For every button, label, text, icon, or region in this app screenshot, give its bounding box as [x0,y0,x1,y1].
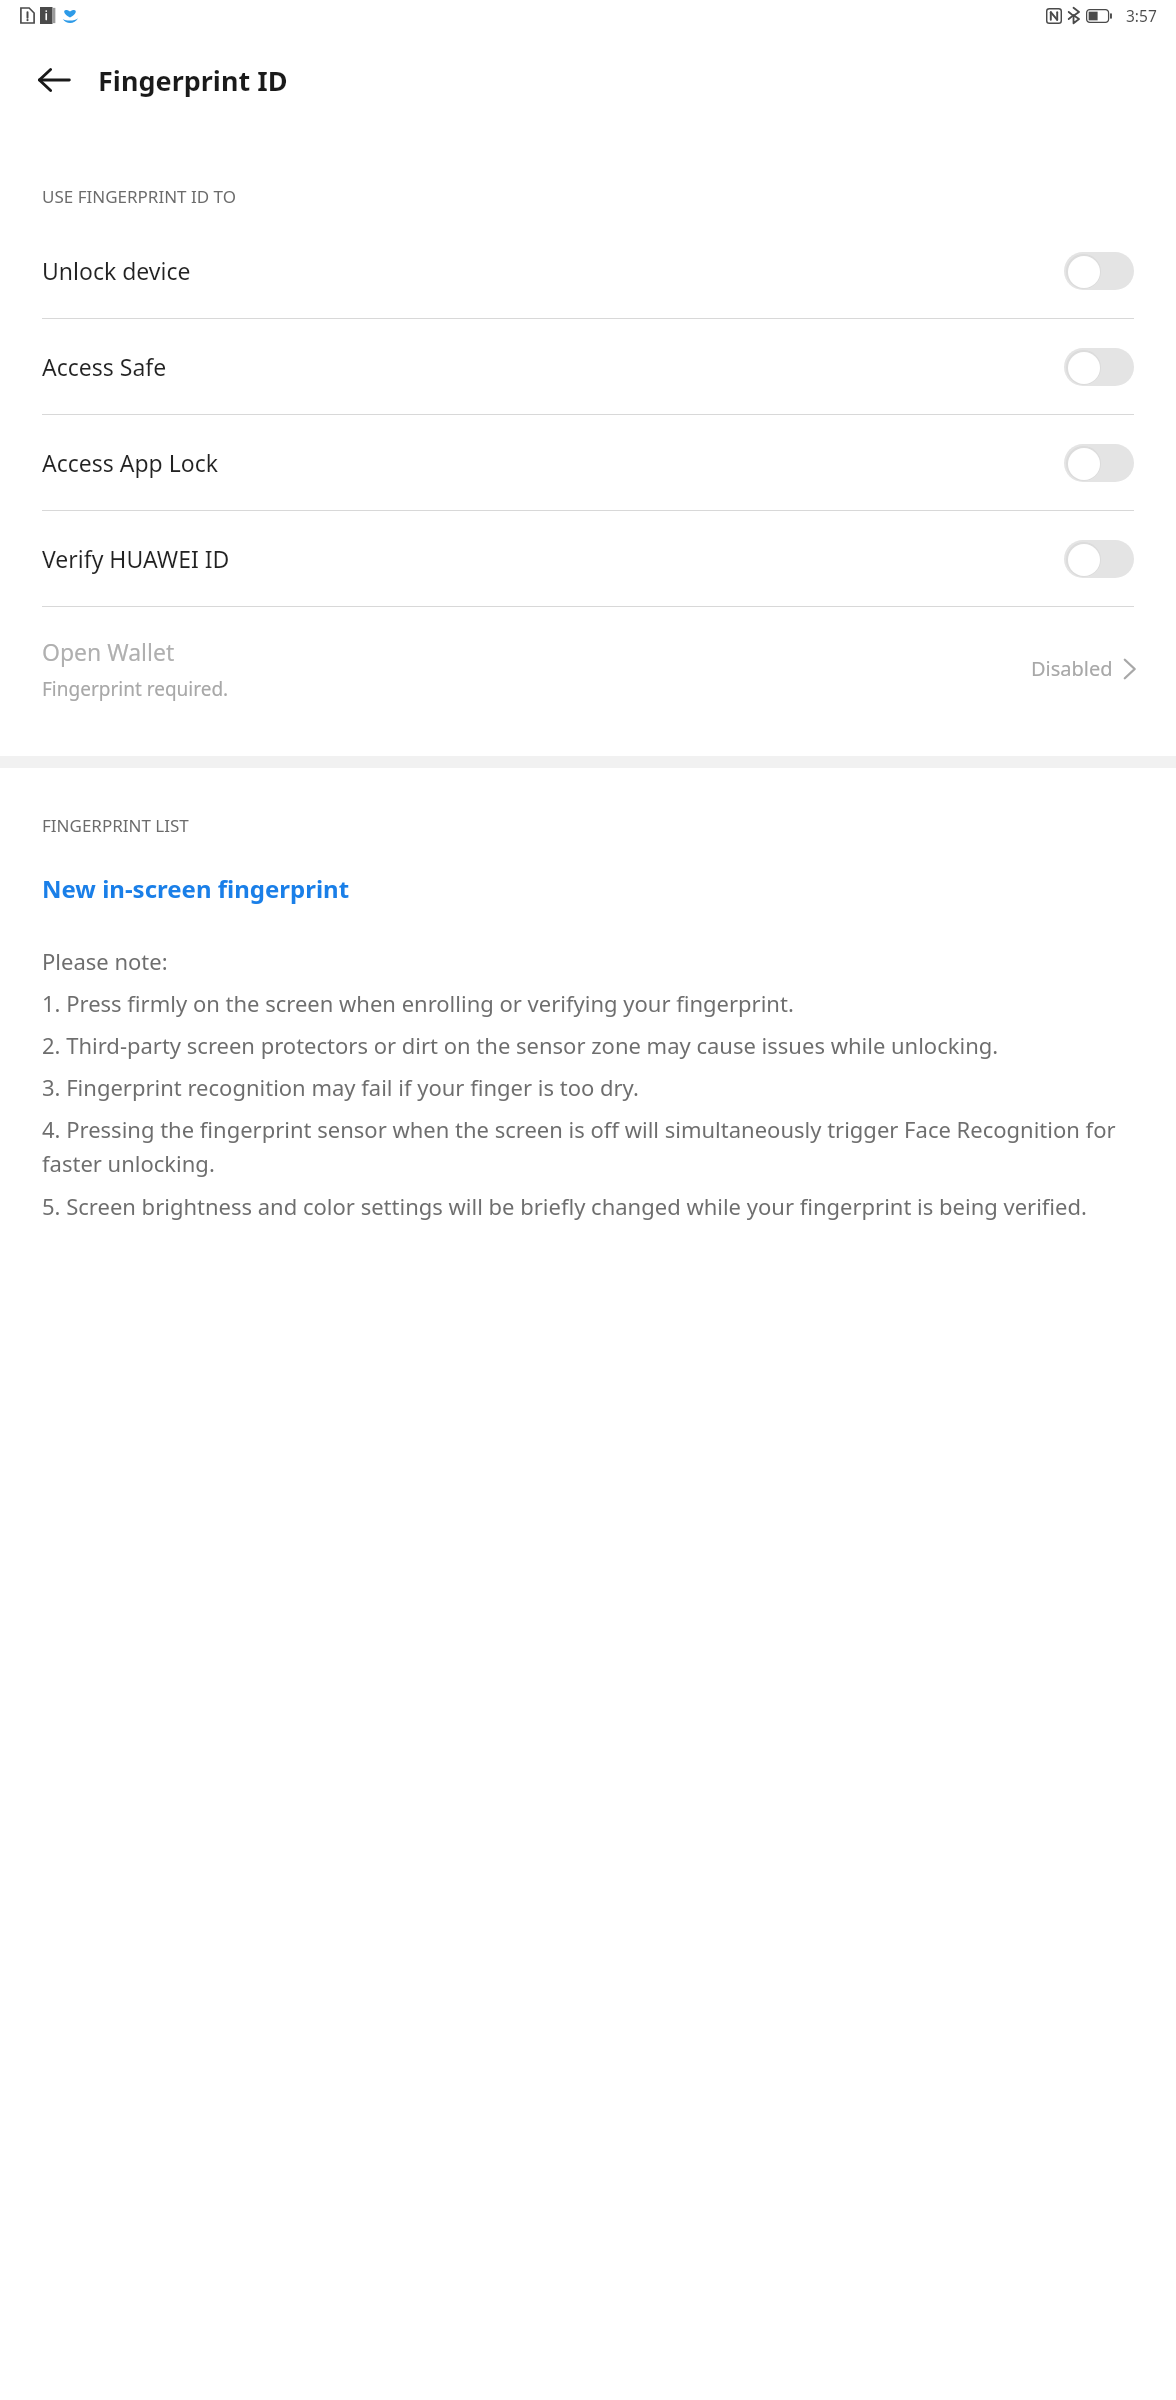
staticText: 4. Pressing the fingerprint sensor when … [42,1114,1142,1179]
button[interactable]: Verify HUAWEI ID [0,511,1176,606]
staticText: 1. Press firmly on the screen when enrol… [42,988,794,1018]
staticText: Verify HUAWEI ID [42,543,1064,574]
staticText: 2. Third-party screen protectors or dirt… [42,1030,999,1060]
button[interactable]: Off [1064,348,1134,386]
staticText: FINGERPRINT LIST [42,814,189,837]
button[interactable]: Off [1064,444,1134,482]
staticText: Disabled [1031,655,1113,682]
button[interactable]: Off [1064,540,1134,578]
staticText: Unlock device [42,255,1064,286]
button[interactable]: Open Wallet [0,607,1176,730]
staticText: Open Wallet [42,636,175,667]
staticText: 3:57 [1126,5,1157,26]
staticText: USE FINGERPRINT ID TO [42,185,236,208]
staticText: Fingerprint ID [98,62,288,99]
button[interactable]: Access Safe [0,319,1176,414]
staticText: 3. Fingerprint recognition may fail if y… [42,1072,639,1102]
button[interactable]: Unlock device [0,223,1176,318]
button[interactable]: Back [26,52,82,108]
staticText: Access Safe [42,351,1064,382]
button[interactable]: Off [1064,252,1134,290]
button[interactable]: Access App Lock [0,415,1176,510]
staticText: Access App Lock [42,447,1064,478]
staticText: New in-screen fingerprint [42,872,350,905]
staticText: Please note: [42,946,168,976]
staticText: 5. Screen brightness and color settings … [42,1191,1087,1221]
staticText: Fingerprint required. [42,676,229,702]
button[interactable]: New in-screen fingerprint [0,852,1176,924]
